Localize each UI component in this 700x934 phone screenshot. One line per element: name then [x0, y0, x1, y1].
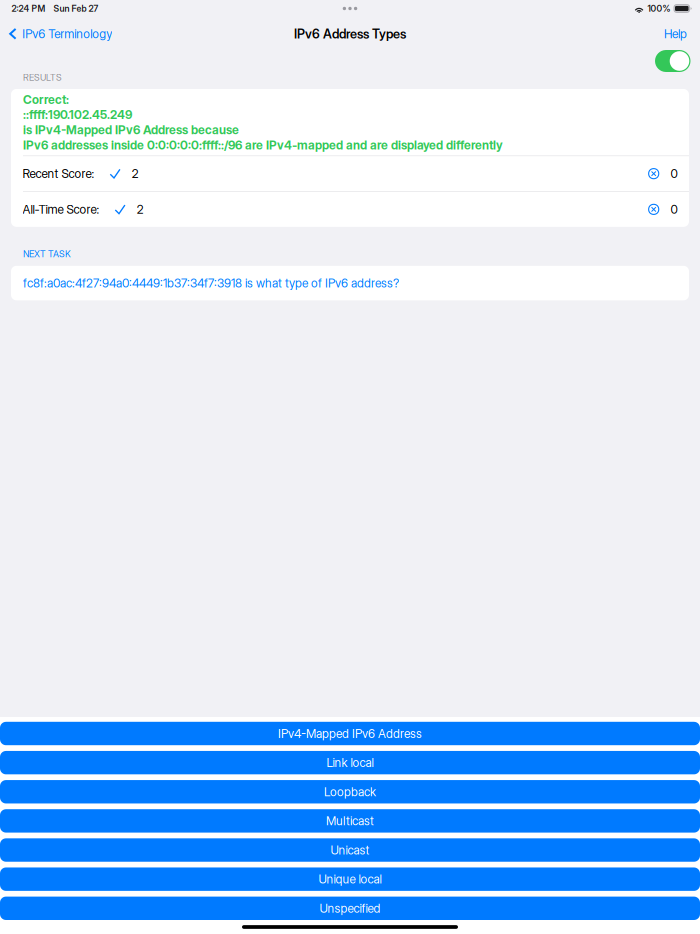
button[interactable]: Toggle sound	[655, 50, 690, 72]
staticText: IPv4-Mapped IPv6 Address	[278, 726, 422, 741]
staticText: Recent Score:	[22, 166, 94, 181]
staticText: Unicast	[330, 843, 369, 857]
staticText: NEXT TASK	[23, 248, 71, 259]
staticText: 2:24 PM	[11, 3, 45, 14]
button[interactable]: Unspecified	[0, 897, 700, 920]
staticText: Sun Feb 27	[53, 3, 98, 14]
button[interactable]: Unique local	[0, 867, 700, 891]
staticText: ::ffff:190.102.45.249	[23, 107, 132, 122]
staticText: IPv6 addresses inside 0:0:0:0:0:ffff::/9…	[23, 137, 503, 153]
staticText: RESULTS	[23, 72, 62, 83]
staticText: Unspecified	[319, 901, 380, 915]
staticText: 2	[132, 166, 139, 181]
staticText: All-Time Score:	[22, 202, 99, 217]
staticText: 0	[670, 202, 677, 217]
button[interactable]: Link local	[0, 751, 700, 774]
staticText: IPv6 Terminology	[22, 26, 112, 41]
staticText: Multicast	[326, 814, 374, 828]
staticText: Help	[664, 26, 687, 41]
button[interactable]: IPv4-Mapped IPv6 Address	[0, 722, 700, 745]
staticText: IPv6 Address Types	[294, 26, 406, 41]
button[interactable]: Unicast	[0, 838, 700, 862]
staticText: is IPv4-Mapped IPv6 Address because	[23, 122, 239, 137]
staticText: 2	[137, 202, 144, 217]
staticText: fc8f:a0ac:4f27:94a0:4449:1b37:34f7:3918 …	[23, 276, 399, 290]
button[interactable]: Multicast	[0, 809, 700, 833]
staticText: 0	[670, 166, 677, 181]
staticText: Link local	[326, 755, 373, 770]
button[interactable]: Help	[657, 20, 694, 48]
staticText: Unique local	[318, 872, 381, 886]
button[interactable]: Loopback	[0, 780, 700, 803]
staticText: Correct:	[23, 92, 69, 107]
staticText: 100%	[647, 3, 670, 14]
staticText: Loopback	[324, 784, 376, 799]
button[interactable]: IPv6 Terminology	[0, 20, 120, 48]
